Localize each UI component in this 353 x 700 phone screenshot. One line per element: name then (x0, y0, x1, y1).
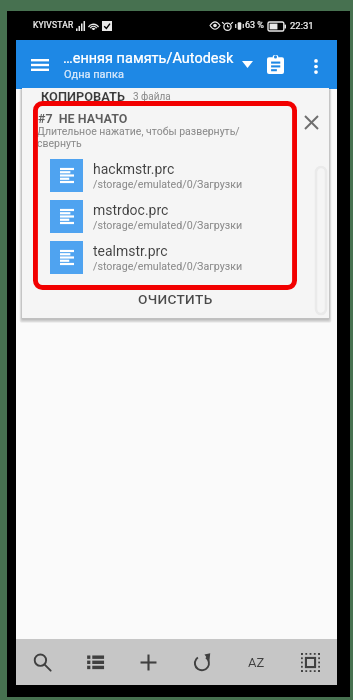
button[interactable]: ОЧИСТИТЬ (22, 287, 329, 311)
staticText: 22:31 (290, 20, 314, 31)
staticText: AZ (248, 655, 265, 670)
staticText: ОЧИСТИТЬ (138, 291, 213, 307)
staticText: …енняя память/Autodesk (63, 50, 234, 67)
staticText: KYIVSTAR (33, 20, 74, 30)
button[interactable]: List view (69, 639, 122, 685)
staticText: 3 файла (133, 91, 171, 103)
button[interactable]: Open navigation drawer (20, 45, 60, 85)
button[interactable]: Close (296, 107, 326, 137)
staticText: КОПИРОВАТЬ (41, 89, 125, 104)
staticText: mstrdoc.prc (93, 202, 169, 218)
button[interactable]: Refresh (175, 639, 229, 685)
staticText: #7 НЕ НАЧАТО (38, 111, 128, 126)
staticText: Одна папка (64, 68, 124, 81)
staticText: 63 % (245, 20, 264, 31)
staticText: /storage/emulated/0/Загрузки (93, 260, 243, 273)
staticText: tealmstr.prc (93, 243, 168, 259)
button[interactable]: hackmstr.prc (50, 155, 315, 196)
staticText: hackmstr.prc (93, 161, 175, 177)
button[interactable]: Select all (283, 639, 337, 685)
button[interactable]: Search (16, 639, 69, 685)
staticText: /storage/emulated/0/Загрузки (93, 178, 243, 191)
button[interactable]: …енняя память/Autodesk (61, 40, 271, 89)
button[interactable]: More options (299, 48, 333, 84)
button[interactable]: Add (122, 639, 175, 685)
button[interactable]: Clipboard (257, 45, 293, 83)
staticText: Длительное нажатие, чтобы развернуть/ св… (37, 125, 240, 150)
button[interactable]: tealmstr.prc (50, 237, 315, 278)
button[interactable]: mstrdoc.prc (50, 196, 315, 237)
button[interactable]: Sort A to Z (229, 639, 283, 685)
staticText: /storage/emulated/0/Загрузки (93, 219, 243, 232)
